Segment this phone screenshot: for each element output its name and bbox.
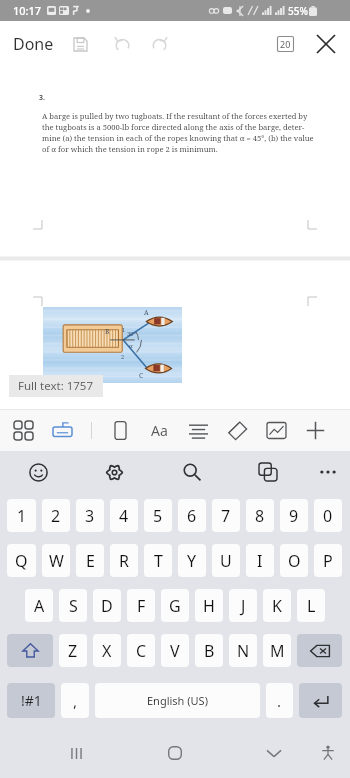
button[interactable]: P xyxy=(314,544,342,577)
button[interactable]: G xyxy=(161,589,189,622)
button[interactable]: D xyxy=(93,589,121,622)
button[interactable]: 7 xyxy=(212,499,240,532)
staticText: A xyxy=(34,595,45,617)
button[interactable]: English (US) xyxy=(95,683,260,718)
button[interactable]: Page xyxy=(101,410,140,451)
staticText: P xyxy=(323,550,333,572)
button[interactable]: Image xyxy=(257,410,296,451)
button[interactable]: J xyxy=(229,589,257,622)
staticText: Z xyxy=(68,640,78,662)
staticText: Aa xyxy=(151,421,168,440)
staticText: D xyxy=(101,595,113,617)
button[interactable]: F xyxy=(127,589,155,622)
staticText: B xyxy=(105,327,110,336)
staticText: C xyxy=(136,640,147,662)
button[interactable]: C xyxy=(127,634,155,667)
staticText: 55% xyxy=(288,4,308,18)
button[interactable]: M xyxy=(263,634,291,667)
button[interactable]: Done xyxy=(5,24,62,64)
button[interactable]: 5 xyxy=(144,499,172,532)
button[interactable]: K xyxy=(263,589,291,622)
staticText: 3 xyxy=(85,505,95,527)
staticText: Y xyxy=(187,550,197,572)
button[interactable]: Enter xyxy=(299,683,342,718)
button[interactable]: Translate xyxy=(244,451,292,493)
button[interactable]: A xyxy=(25,589,53,622)
button[interactable]: 4 xyxy=(110,499,138,532)
staticText: 5 xyxy=(153,505,163,527)
staticText: V xyxy=(170,640,180,662)
staticText: 8 xyxy=(255,505,265,527)
staticText: 2 xyxy=(51,505,61,527)
button[interactable]: W xyxy=(42,544,70,577)
staticText: 2 xyxy=(121,353,125,360)
button[interactable]: 2 xyxy=(42,499,70,532)
button[interactable]: Close xyxy=(305,23,347,65)
staticText: F xyxy=(137,595,146,617)
button[interactable]: 1 xyxy=(7,499,36,532)
staticText: G xyxy=(169,595,181,617)
button[interactable]: E xyxy=(76,544,104,577)
button[interactable]: Save xyxy=(63,27,97,61)
button[interactable]: B xyxy=(195,634,223,667)
staticText: !#1 xyxy=(21,691,42,710)
staticText: 20 xyxy=(280,38,291,50)
staticText: 7 xyxy=(221,505,231,527)
button[interactable]: I xyxy=(246,544,274,577)
button[interactable]: X xyxy=(93,634,121,667)
button[interactable]: 3 xyxy=(76,499,104,532)
button[interactable]: Settings xyxy=(90,451,138,493)
button[interactable]: Keyboard xyxy=(43,410,82,451)
button[interactable]: Accessibility xyxy=(306,731,350,775)
button[interactable]: Apps xyxy=(4,410,43,451)
button[interactable]: Add xyxy=(296,410,335,451)
button[interactable]: L xyxy=(297,589,325,622)
staticText: J xyxy=(241,595,246,617)
button[interactable]: 8 xyxy=(246,499,274,532)
staticText: L xyxy=(307,595,316,617)
button[interactable]: N xyxy=(229,634,257,667)
button[interactable]: V xyxy=(161,634,189,667)
button[interactable]: H xyxy=(195,589,223,622)
button[interactable]: Emoji xyxy=(14,451,62,493)
button[interactable]: Align xyxy=(179,410,218,451)
button[interactable]: Page count xyxy=(267,26,303,62)
button[interactable]: Home xyxy=(153,731,197,775)
button[interactable]: Undo xyxy=(105,27,139,61)
button[interactable]: !#1 xyxy=(7,683,55,718)
staticText: , xyxy=(73,691,78,711)
button[interactable]: Shift xyxy=(7,634,53,667)
button[interactable]: Font xyxy=(140,410,179,451)
staticText: C xyxy=(139,371,143,380)
button[interactable]: O xyxy=(280,544,308,577)
button[interactable]: Q xyxy=(7,544,36,577)
button[interactable]: . xyxy=(266,683,293,718)
button[interactable]: 9 xyxy=(280,499,308,532)
button[interactable]: S xyxy=(59,589,87,622)
button[interactable]: U xyxy=(212,544,240,577)
staticText: U xyxy=(220,550,232,572)
staticText: the tugboats is a 5000-lb force directed… xyxy=(42,122,305,132)
button[interactable]: 6 xyxy=(178,499,206,532)
staticText: Done xyxy=(13,33,54,55)
button[interactable]: T xyxy=(144,544,172,577)
button[interactable]: More options xyxy=(305,451,350,493)
button[interactable]: Backspace xyxy=(297,634,342,667)
button[interactable]: Back xyxy=(252,731,296,775)
staticText: mine (a) the tension in each of the rope… xyxy=(42,133,314,143)
staticText: T xyxy=(154,550,163,572)
button[interactable]: Recent apps xyxy=(54,731,98,775)
staticText: K xyxy=(272,595,282,617)
staticText: English (US) xyxy=(147,693,208,708)
staticText: X xyxy=(102,640,112,662)
button[interactable]: Redo xyxy=(142,27,176,61)
button[interactable]: Search xyxy=(168,451,216,493)
button[interactable]: Highlight xyxy=(218,410,257,451)
button[interactable]: R xyxy=(110,544,138,577)
button[interactable]: 0 xyxy=(314,499,342,532)
button[interactable]: , xyxy=(61,683,89,718)
staticText: 1 xyxy=(17,505,27,527)
button[interactable]: Z xyxy=(59,634,87,667)
staticText: α xyxy=(129,342,133,350)
button[interactable]: Y xyxy=(178,544,206,577)
